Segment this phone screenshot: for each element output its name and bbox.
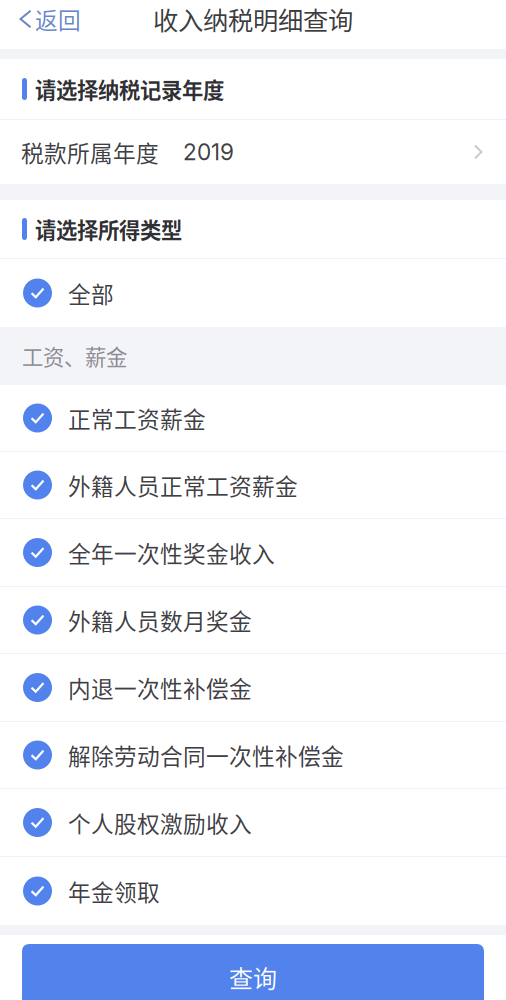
staticText: 年金领取 [68, 875, 160, 907]
button[interactable]: 正常工资薪金 [0, 385, 506, 452]
staticText: 查询 [229, 960, 277, 994]
staticText: 2019 [183, 138, 234, 166]
staticText: 外籍人员数月奖金 [68, 604, 252, 636]
button[interactable]: 查询 [22, 944, 484, 1000]
staticText: 收入纳税明细查询 [153, 1, 353, 37]
button[interactable]: 全年一次性奖金收入 [0, 519, 506, 587]
staticText: 内退一次性补偿金 [68, 671, 252, 704]
staticText: 请选择所得类型 [35, 214, 182, 244]
staticText: 个人股权激励收入 [68, 806, 252, 839]
staticText: 正常工资薪金 [68, 402, 206, 434]
staticText: 税款所属年度 [21, 136, 159, 168]
staticText: 解除劳动合同一次性补偿金 [68, 739, 344, 771]
staticText: 请选择纳税记录年度 [35, 74, 224, 104]
button[interactable]: 外籍人员数月奖金 [0, 587, 506, 654]
button[interactable]: 解除劳动合同一次性补偿金 [0, 722, 506, 789]
staticText: 全部 [68, 277, 114, 309]
button[interactable]: 内退一次性补偿金 [0, 654, 506, 722]
button[interactable]: 年金领取 [0, 857, 506, 925]
button[interactable]: 个人股权激励收入 [0, 789, 506, 857]
button[interactable]: 税款所属年度 [0, 120, 506, 184]
staticText: 全年一次性奖金收入 [68, 536, 275, 569]
button[interactable]: 全部 [0, 259, 506, 327]
staticText: 工资、薪金 [22, 341, 127, 371]
staticText: 返回 [35, 3, 81, 35]
staticText: 外籍人员正常工资薪金 [68, 469, 298, 501]
button[interactable]: 返回 [0, 0, 95, 38]
button[interactable]: 外籍人员正常工资薪金 [0, 452, 506, 519]
